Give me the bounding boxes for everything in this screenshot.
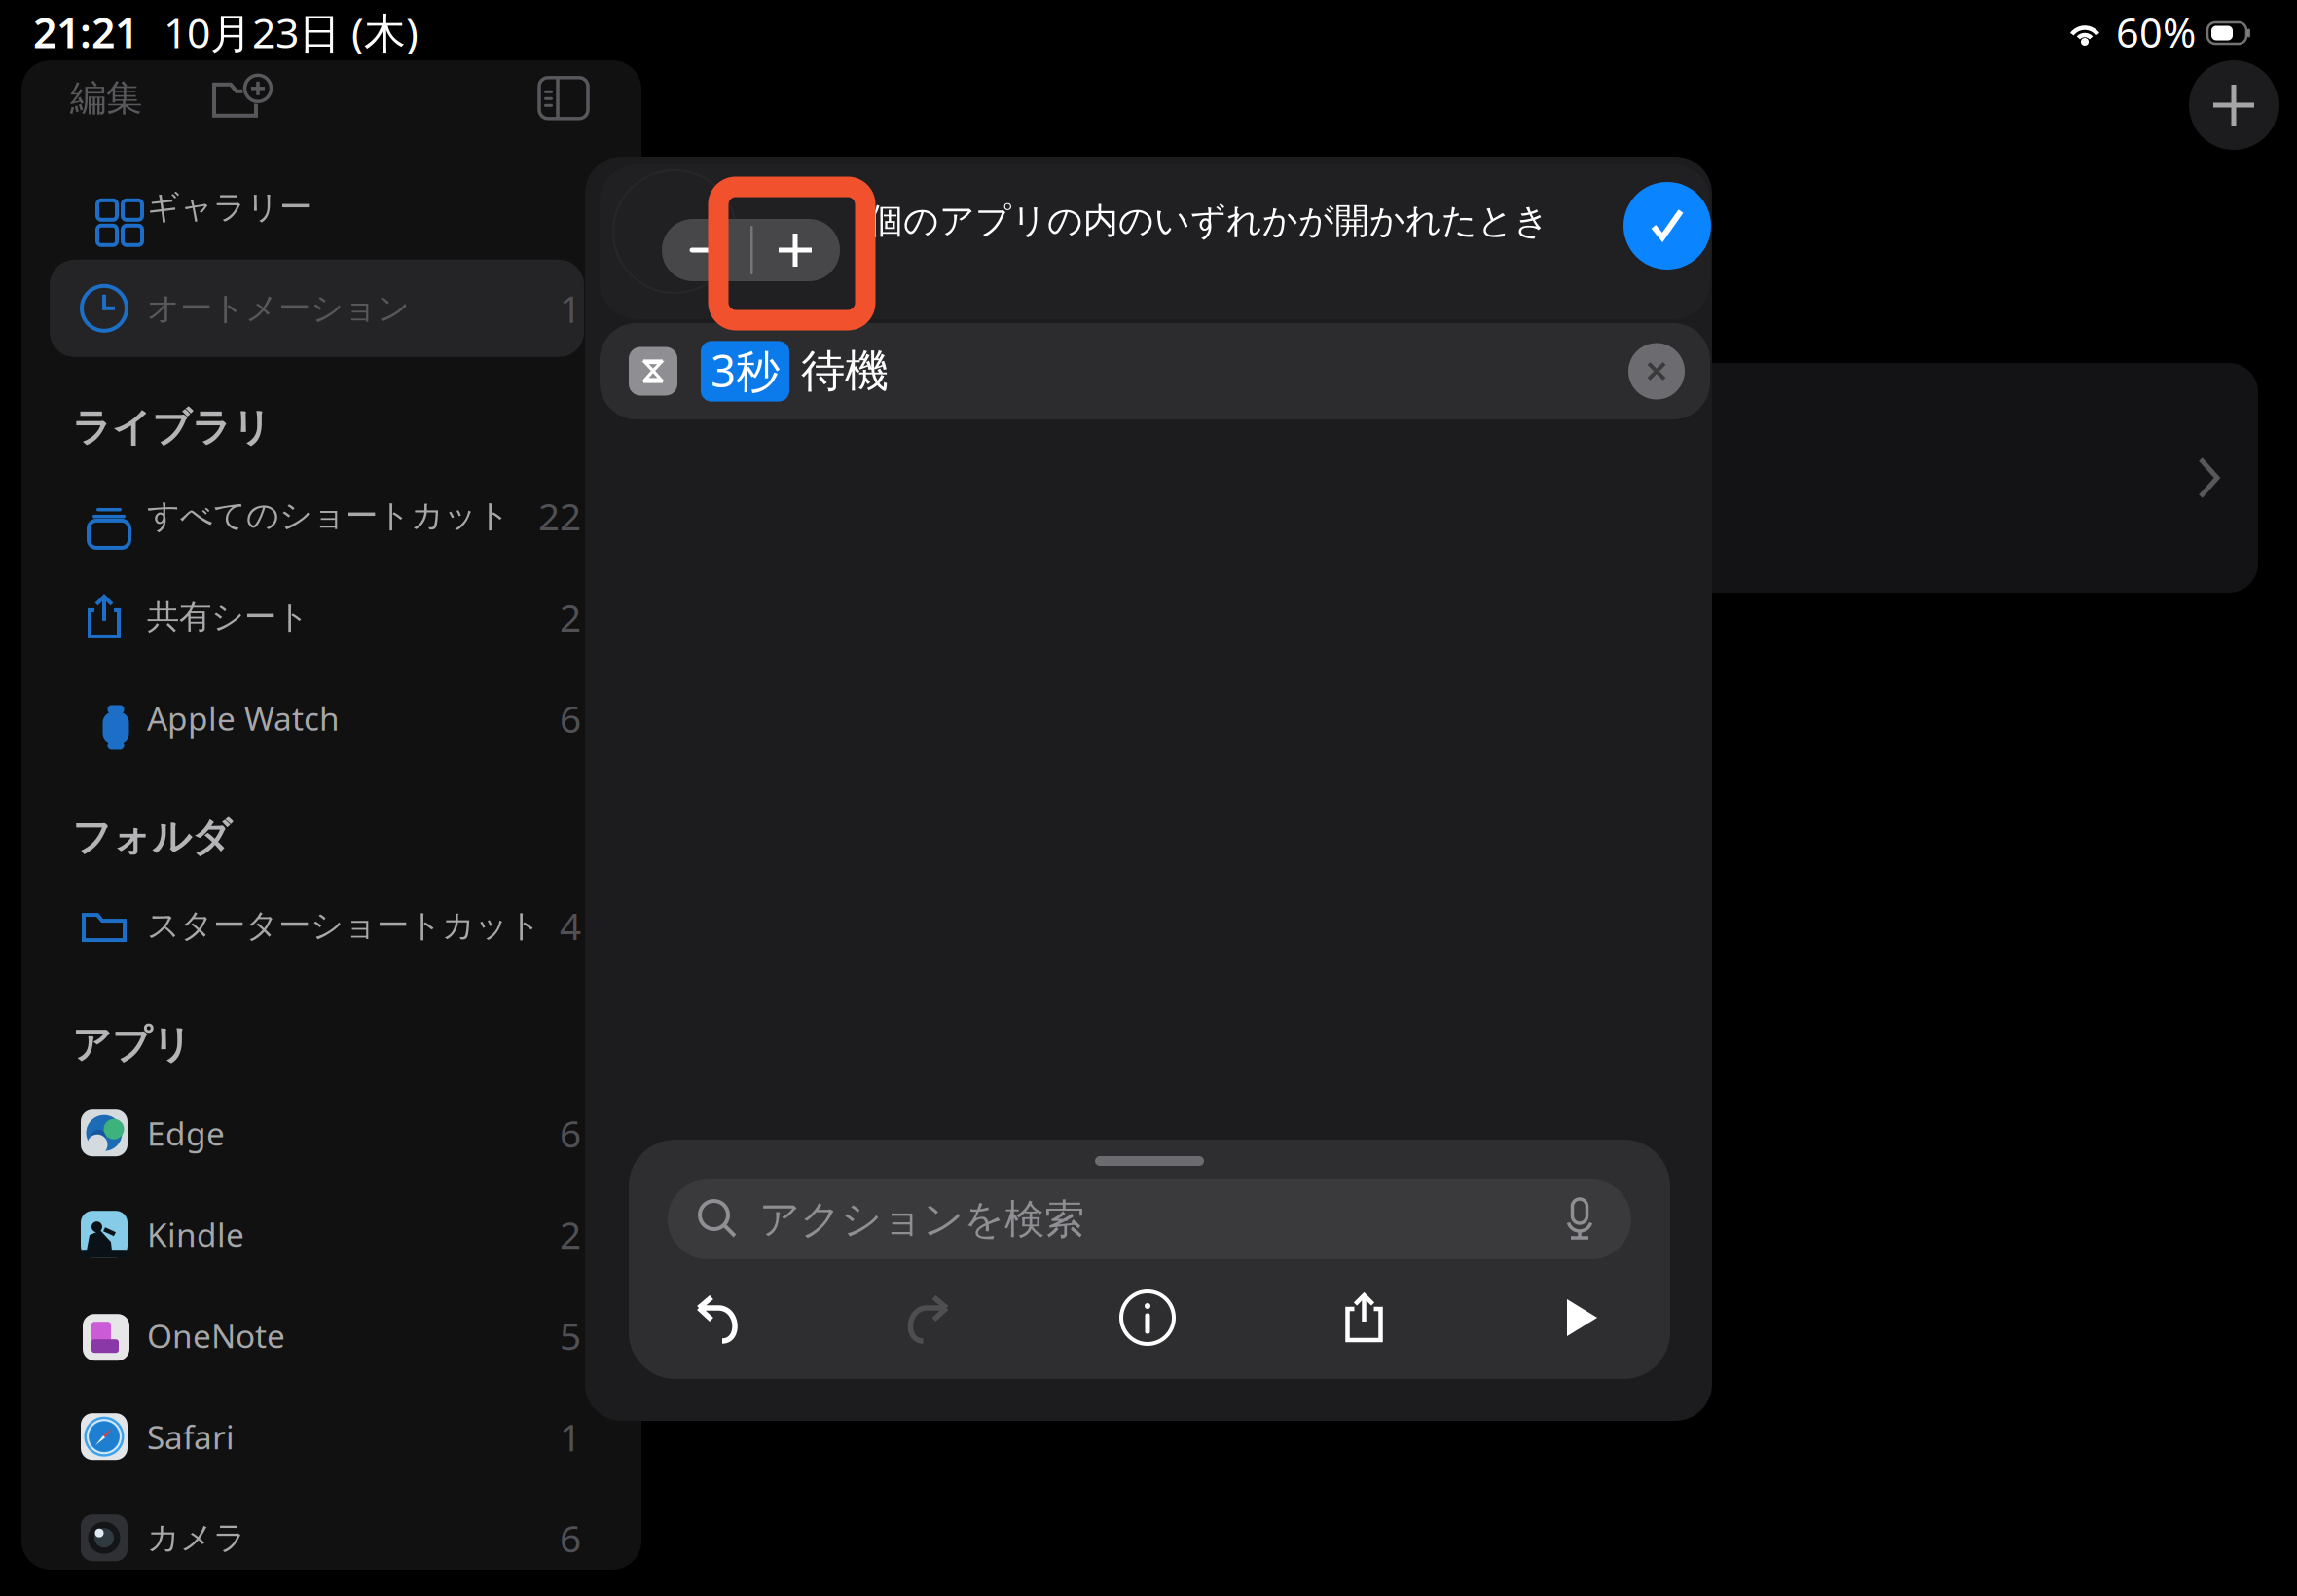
staticText: カメラ xyxy=(147,1518,246,1558)
button[interactable]: ギャラリー xyxy=(21,156,584,258)
staticText: 待機 xyxy=(801,344,889,398)
button[interactable]: Safari xyxy=(21,1386,584,1487)
staticText: Apple Watch xyxy=(147,697,340,740)
button[interactable]: Edge xyxy=(21,1082,584,1184)
button[interactable]: Add Automation xyxy=(2189,60,2279,150)
button[interactable]: スターターショートカット xyxy=(21,875,584,976)
staticText: アプリ xyxy=(72,1021,192,1069)
button[interactable]: Share xyxy=(1321,1275,1407,1360)
staticText: 編集 xyxy=(70,76,142,120)
staticText: Kindle xyxy=(147,1213,244,1256)
staticText: 5 xyxy=(560,1310,581,1360)
staticText: 6 xyxy=(560,1513,581,1563)
button[interactable]: Info xyxy=(1105,1275,1190,1360)
staticText: 共有シート xyxy=(147,597,310,637)
staticText: 1 xyxy=(560,283,581,333)
staticText: 3秒 xyxy=(711,341,780,400)
staticText: OneNote xyxy=(147,1314,285,1357)
button[interactable]: 共有シート xyxy=(21,566,584,667)
button[interactable]: Redo xyxy=(888,1275,974,1360)
button[interactable]: 編集 xyxy=(70,68,142,128)
staticText: スターターショートカット xyxy=(147,906,541,945)
button[interactable]: Apple Watch xyxy=(21,667,584,769)
button[interactable]: Automation xyxy=(1635,363,2258,593)
staticText: 2 xyxy=(560,592,581,642)
button[interactable]: すべてのショートカット xyxy=(21,465,584,566)
staticText: 2 xyxy=(560,1209,581,1259)
staticText: 21:21 xyxy=(33,5,138,60)
staticText: 60% xyxy=(2116,5,2196,59)
button[interactable]: Confirm xyxy=(1623,182,1711,270)
button[interactable]: Increase xyxy=(750,219,840,281)
staticText: 4 xyxy=(560,901,581,950)
button[interactable]: OneNote xyxy=(21,1285,584,1386)
button[interactable]: Kindle xyxy=(21,1184,584,1285)
button[interactable]: Hide Sidebar xyxy=(538,77,589,120)
staticText: すべてのショートカット xyxy=(147,496,510,536)
button[interactable]: Run xyxy=(1538,1275,1623,1360)
staticText: Edge xyxy=(147,1111,225,1155)
button[interactable]: Remove Action xyxy=(1628,343,1685,399)
staticText: 個のアプリの内のいずれかが開かれたとき xyxy=(868,199,1550,243)
staticText: アクションを検索 xyxy=(759,1195,1084,1244)
staticText: ライブラリ xyxy=(72,404,272,451)
staticText: 1 xyxy=(560,1412,581,1462)
staticText: ギャラリー xyxy=(147,187,311,227)
staticText: 6 xyxy=(560,693,581,743)
button[interactable]: Decrease xyxy=(662,219,750,281)
staticText: 6 xyxy=(560,1108,581,1158)
staticText: Safari xyxy=(147,1415,235,1458)
staticText: 22 xyxy=(538,491,581,541)
button[interactable]: オートメーション xyxy=(21,258,584,359)
staticText: フォルダ xyxy=(72,813,232,861)
button[interactable]: New Folder xyxy=(212,71,269,125)
staticText: 10月23日 (木) xyxy=(164,5,419,60)
staticText: オートメーション xyxy=(147,288,410,328)
button[interactable]: Undo xyxy=(672,1275,757,1360)
button[interactable]: カメラ xyxy=(21,1487,584,1588)
